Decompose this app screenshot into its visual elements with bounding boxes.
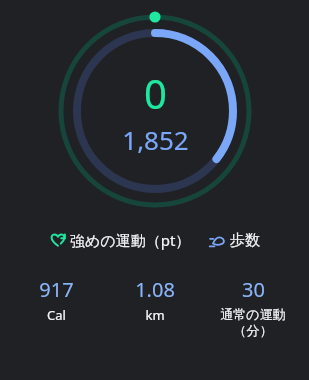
staticText: 30 — [242, 276, 265, 303]
other: Heart points — [49, 231, 67, 249]
staticText: 917 — [39, 276, 74, 303]
staticText: 1.08 — [135, 276, 175, 303]
button[interactable]: Heart points — [49, 230, 191, 250]
staticText: 通常の運動 （分） — [220, 306, 286, 339]
button[interactable]: 1.08 — [107, 274, 203, 326]
button[interactable]: 30 — [205, 274, 301, 341]
staticText: 1,852 — [122, 122, 189, 157]
button[interactable]: 0 — [52, 8, 258, 214]
other: Steps — [209, 232, 227, 250]
button[interactable]: 917 — [8, 274, 104, 326]
staticText: 強めの運動（pt） — [70, 230, 191, 250]
staticText: 0 — [144, 66, 167, 120]
staticText: 歩数 — [230, 231, 260, 250]
staticText: km — [145, 306, 165, 324]
staticText: Cal — [47, 306, 66, 324]
button[interactable]: Steps — [209, 231, 260, 250]
